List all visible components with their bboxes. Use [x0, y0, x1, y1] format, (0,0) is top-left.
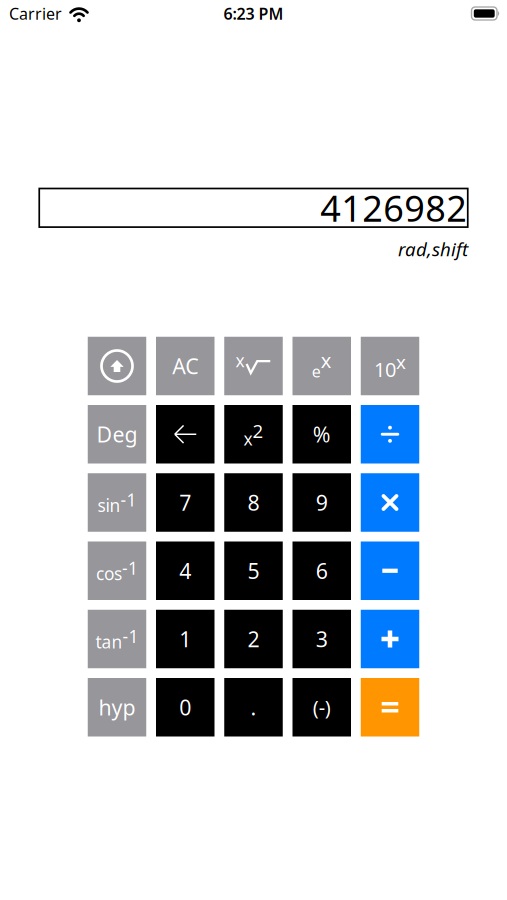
staticText: 3 — [316, 625, 328, 653]
button[interactable]: x squared — [224, 405, 283, 463]
button[interactable]: x-th root — [224, 337, 283, 395]
button[interactable]: AC — [156, 337, 214, 395]
button[interactable]: Multiply — [361, 473, 419, 532]
staticText: cos-1 — [96, 556, 138, 585]
button[interactable]: 4 — [156, 541, 214, 600]
button[interactable]: . — [224, 678, 283, 736]
staticText: 0 — [179, 693, 191, 721]
button[interactable]: (-) — [292, 678, 351, 736]
staticText: 4 — [179, 557, 191, 585]
button[interactable]: Divide — [361, 405, 419, 463]
button[interactable]: % — [292, 405, 351, 463]
staticText: Deg — [96, 420, 137, 448]
button[interactable]: Shift — [88, 337, 146, 395]
button[interactable]: Deg — [88, 405, 146, 463]
staticText: AC — [172, 352, 198, 380]
staticText: ex — [312, 347, 332, 382]
button[interactable]: 8 — [224, 473, 283, 532]
staticText: % — [313, 420, 331, 448]
staticText: (-) — [313, 694, 331, 721]
button[interactable]: Equals — [361, 678, 419, 736]
staticText: 6 — [316, 557, 328, 585]
button[interactable]: 2 — [224, 610, 283, 668]
button[interactable]: Add — [361, 610, 419, 668]
staticText: x — [235, 349, 244, 372]
button[interactable]: Backspace — [156, 405, 214, 463]
staticText: sin-1 — [97, 488, 136, 517]
staticText: 7 — [179, 488, 191, 517]
staticText: Carrier — [9, 3, 62, 24]
button[interactable]: 10 to the x — [361, 337, 419, 395]
staticText: x2 — [243, 418, 263, 450]
button[interactable]: 9 — [292, 473, 351, 532]
staticText: . — [250, 693, 256, 721]
staticText: rad,shift — [398, 237, 468, 261]
button[interactable]: 3 — [292, 610, 351, 668]
staticText: 8 — [247, 488, 259, 517]
button[interactable]: 7 — [156, 473, 214, 532]
button[interactable]: Inverse tangent — [88, 610, 146, 668]
button[interactable]: Inverse cosine — [88, 541, 146, 600]
button[interactable]: 0 — [156, 678, 214, 736]
staticText: 9 — [316, 488, 328, 517]
staticText: 2 — [247, 625, 259, 653]
staticText: tan-1 — [95, 625, 138, 653]
button[interactable]: hyp — [88, 678, 146, 736]
staticText: 4126982 — [320, 184, 467, 232]
staticText: 6:23 PM — [223, 3, 283, 24]
staticText: 1 — [179, 625, 191, 653]
staticText: hyp — [98, 693, 135, 721]
button[interactable]: 6 — [292, 541, 351, 600]
button[interactable]: Inverse sine — [88, 473, 146, 532]
button[interactable]: Subtract — [361, 541, 419, 600]
button[interactable]: e to the x — [292, 337, 351, 395]
button[interactable]: 5 — [224, 541, 283, 600]
staticText: 10x — [374, 349, 406, 383]
staticText: 5 — [247, 557, 259, 585]
button[interactable]: 1 — [156, 610, 214, 668]
